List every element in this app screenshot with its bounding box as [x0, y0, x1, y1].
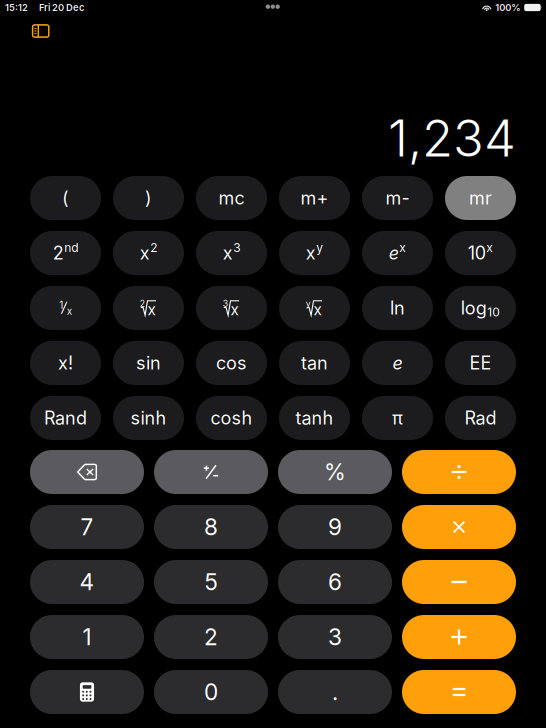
staticText: Rad	[464, 407, 496, 429]
button[interactable]: Show Sidebar	[23, 16, 59, 46]
button[interactable]	[279, 396, 350, 440]
staticText: mr	[469, 187, 492, 209]
button[interactable]: Divide	[402, 450, 516, 494]
button[interactable]	[154, 505, 268, 549]
button[interactable]	[113, 286, 184, 330]
button[interactable]	[113, 231, 184, 275]
button[interactable]: Subtract	[402, 560, 516, 604]
staticText: 10	[468, 242, 486, 264]
button[interactable]	[154, 615, 268, 659]
staticText: x	[230, 300, 238, 319]
button[interactable]	[30, 396, 101, 440]
button[interactable]	[30, 286, 101, 330]
staticText: 3	[233, 240, 240, 255]
button[interactable]	[362, 396, 433, 440]
staticText: 5	[204, 568, 217, 596]
staticText: 7	[80, 513, 93, 541]
staticText: .	[332, 678, 338, 706]
staticText: 100%	[495, 2, 520, 13]
staticText: nd	[64, 240, 78, 255]
button[interactable]	[30, 615, 144, 659]
staticText: x	[147, 300, 155, 319]
button[interactable]	[113, 396, 184, 440]
staticText: m-	[385, 187, 409, 209]
staticText: m+	[300, 187, 328, 209]
button[interactable]	[445, 231, 516, 275]
staticText: %	[324, 458, 346, 486]
button[interactable]	[113, 176, 184, 220]
staticText: x	[140, 242, 150, 264]
button[interactable]: Toggle sign	[154, 450, 268, 494]
button[interactable]: Equals	[402, 670, 516, 714]
button[interactable]	[278, 450, 392, 494]
button[interactable]	[445, 341, 516, 385]
button[interactable]	[113, 341, 184, 385]
staticText: EE	[469, 352, 491, 374]
button[interactable]	[196, 396, 267, 440]
button[interactable]: Add	[402, 615, 516, 659]
button[interactable]: Basic calculator	[30, 670, 144, 714]
staticText: tanh	[295, 407, 333, 429]
staticText: 9	[328, 513, 342, 541]
staticText: x	[306, 242, 316, 264]
staticText: 0	[204, 678, 218, 706]
button[interactable]	[30, 505, 144, 549]
staticText: 10	[487, 305, 500, 319]
button[interactable]	[445, 286, 516, 330]
staticText: 2	[140, 298, 145, 309]
button[interactable]	[30, 176, 101, 220]
staticText: x	[486, 240, 493, 255]
staticText: x	[223, 242, 233, 264]
staticText: 2	[204, 623, 218, 651]
staticText: x!	[58, 352, 73, 374]
button[interactable]	[30, 341, 101, 385]
staticText: (	[62, 187, 69, 209]
button[interactable]	[445, 396, 516, 440]
button[interactable]	[362, 176, 433, 220]
staticText: π	[392, 407, 403, 429]
staticText: e	[392, 352, 402, 374]
button[interactable]: Delete	[30, 450, 144, 494]
button[interactable]	[30, 231, 101, 275]
button[interactable]	[278, 560, 392, 604]
staticText: 15:12	[5, 2, 28, 13]
staticText: 3	[223, 298, 228, 309]
button[interactable]	[279, 231, 350, 275]
staticText: y	[316, 240, 323, 255]
staticText: Fri 20 Dec	[39, 2, 84, 13]
staticText: 4	[79, 568, 94, 596]
button[interactable]	[154, 670, 268, 714]
staticText: 8	[204, 513, 218, 541]
staticText: 6	[328, 568, 342, 596]
button[interactable]	[279, 176, 350, 220]
button[interactable]	[30, 560, 144, 604]
button[interactable]	[196, 176, 267, 220]
button[interactable]	[196, 231, 267, 275]
button[interactable]	[196, 341, 267, 385]
staticText: e	[389, 242, 399, 264]
staticText: 2	[150, 240, 157, 255]
staticText: 1,234	[388, 107, 516, 169]
button[interactable]	[278, 615, 392, 659]
button[interactable]	[196, 286, 267, 330]
staticText: cos	[216, 352, 247, 374]
staticText: log	[461, 297, 487, 319]
button[interactable]	[362, 231, 433, 275]
button[interactable]	[278, 670, 392, 714]
staticText: mc	[218, 187, 244, 209]
button[interactable]	[154, 560, 268, 604]
staticText: y	[306, 298, 311, 309]
staticText: x	[313, 300, 321, 319]
staticText: cosh	[210, 407, 252, 429]
button[interactable]	[445, 176, 516, 220]
button[interactable]	[362, 286, 433, 330]
button[interactable]	[279, 341, 350, 385]
button[interactable]	[362, 341, 433, 385]
staticText: )	[145, 187, 152, 209]
staticText: 1	[59, 299, 63, 311]
staticText: x	[67, 305, 72, 317]
button[interactable]: Multiply	[402, 505, 516, 549]
button[interactable]	[279, 286, 350, 330]
staticText: 1	[82, 623, 91, 651]
button[interactable]	[278, 505, 392, 549]
